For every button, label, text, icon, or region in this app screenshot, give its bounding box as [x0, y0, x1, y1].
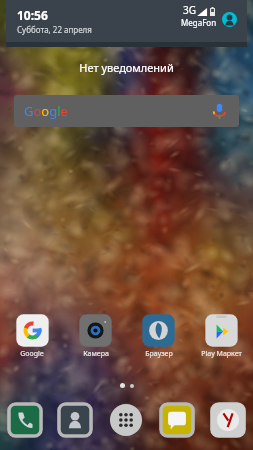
button[interactable]: Браузер	[127, 314, 190, 359]
button[interactable]: Google	[0, 314, 64, 359]
button[interactable]: Phone	[0, 402, 50, 438]
button[interactable]: Камера	[64, 314, 127, 359]
staticText: Камера	[83, 349, 109, 359]
button[interactable]: Messaging	[151, 402, 202, 438]
button[interactable]: Contacts	[50, 402, 100, 438]
button[interactable]: Account	[222, 12, 237, 27]
button[interactable]: Google	[14, 95, 239, 127]
staticText: Суббота, 22 апреля	[17, 24, 92, 35]
staticText: Нет уведомлений	[79, 60, 174, 75]
staticText: Play Маркет	[201, 349, 242, 359]
staticText: Google	[20, 349, 44, 359]
staticText: MegaFon	[181, 17, 217, 28]
staticText: Google	[24, 102, 68, 120]
button[interactable]: Yandex	[202, 402, 253, 438]
staticText: 3G	[183, 3, 196, 17]
button[interactable]: Play Маркет	[190, 314, 253, 359]
button[interactable]: All apps	[100, 402, 151, 438]
other: Voice search	[212, 104, 227, 119]
staticText: 10:56	[17, 7, 48, 23]
staticText: Браузер	[145, 349, 173, 359]
